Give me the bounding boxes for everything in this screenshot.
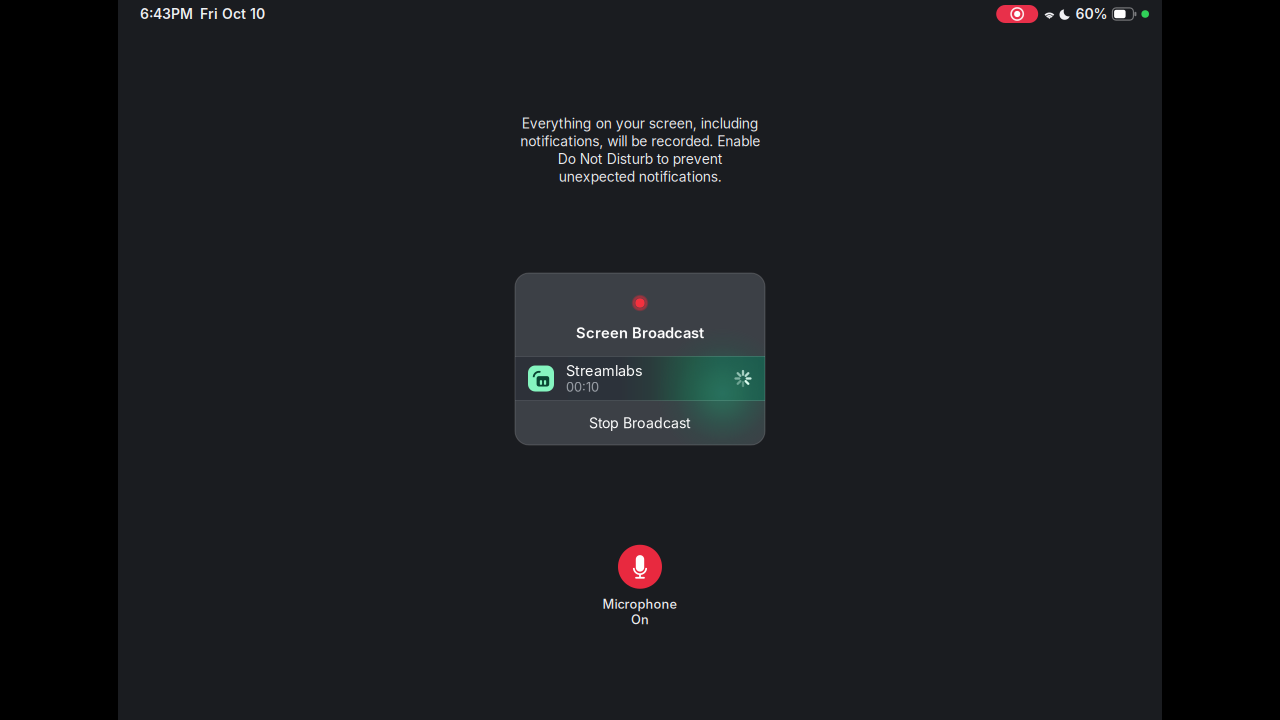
staticText: 6:43PM [140, 5, 193, 22]
staticText: 60% [1075, 5, 1107, 22]
button[interactable]: Microphone On [602, 545, 677, 627]
staticText: Fri Oct 10 [200, 5, 265, 22]
staticText: On [631, 612, 649, 627]
staticText: Streamlabs [566, 362, 643, 379]
staticText: 00:10 [566, 379, 599, 395]
button[interactable]: Stop Broadcast [515, 401, 765, 445]
staticText: Everything on your screen, including not… [520, 115, 760, 185]
staticText: Microphone [602, 596, 677, 612]
staticText: Stop Broadcast [589, 414, 691, 431]
staticText: Screen Broadcast [576, 324, 704, 342]
